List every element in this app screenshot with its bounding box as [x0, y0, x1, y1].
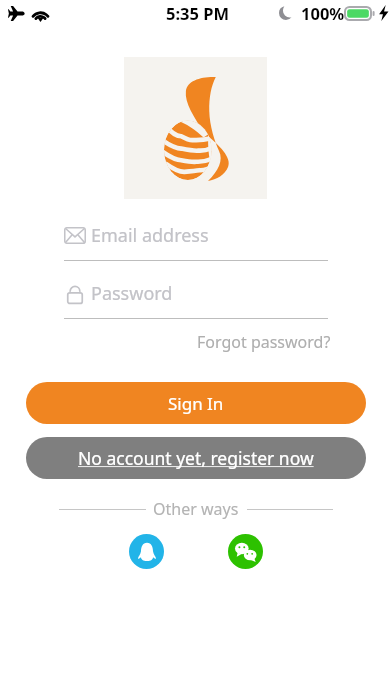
staticText: Email address: [91, 223, 209, 248]
staticText: 5:35 PM: [166, 2, 230, 24]
staticText: Other ways: [153, 498, 239, 520]
button[interactable]: Email address: [64, 216, 328, 261]
staticText: Sign In: [168, 392, 224, 415]
staticText: 100%: [301, 2, 345, 24]
button[interactable]: Sign in with WeChat: [228, 534, 263, 569]
staticText: No account yet, register now: [78, 446, 314, 470]
button[interactable]: Sign In: [26, 382, 366, 424]
button[interactable]: No account yet, register now: [26, 437, 366, 479]
button[interactable]: Password: [64, 274, 328, 319]
button[interactable]: Sign in with QQ: [129, 534, 164, 569]
button[interactable]: Forgot password?: [197, 327, 331, 357]
staticText: Forgot password?: [197, 331, 331, 353]
staticText: Password: [91, 281, 173, 306]
